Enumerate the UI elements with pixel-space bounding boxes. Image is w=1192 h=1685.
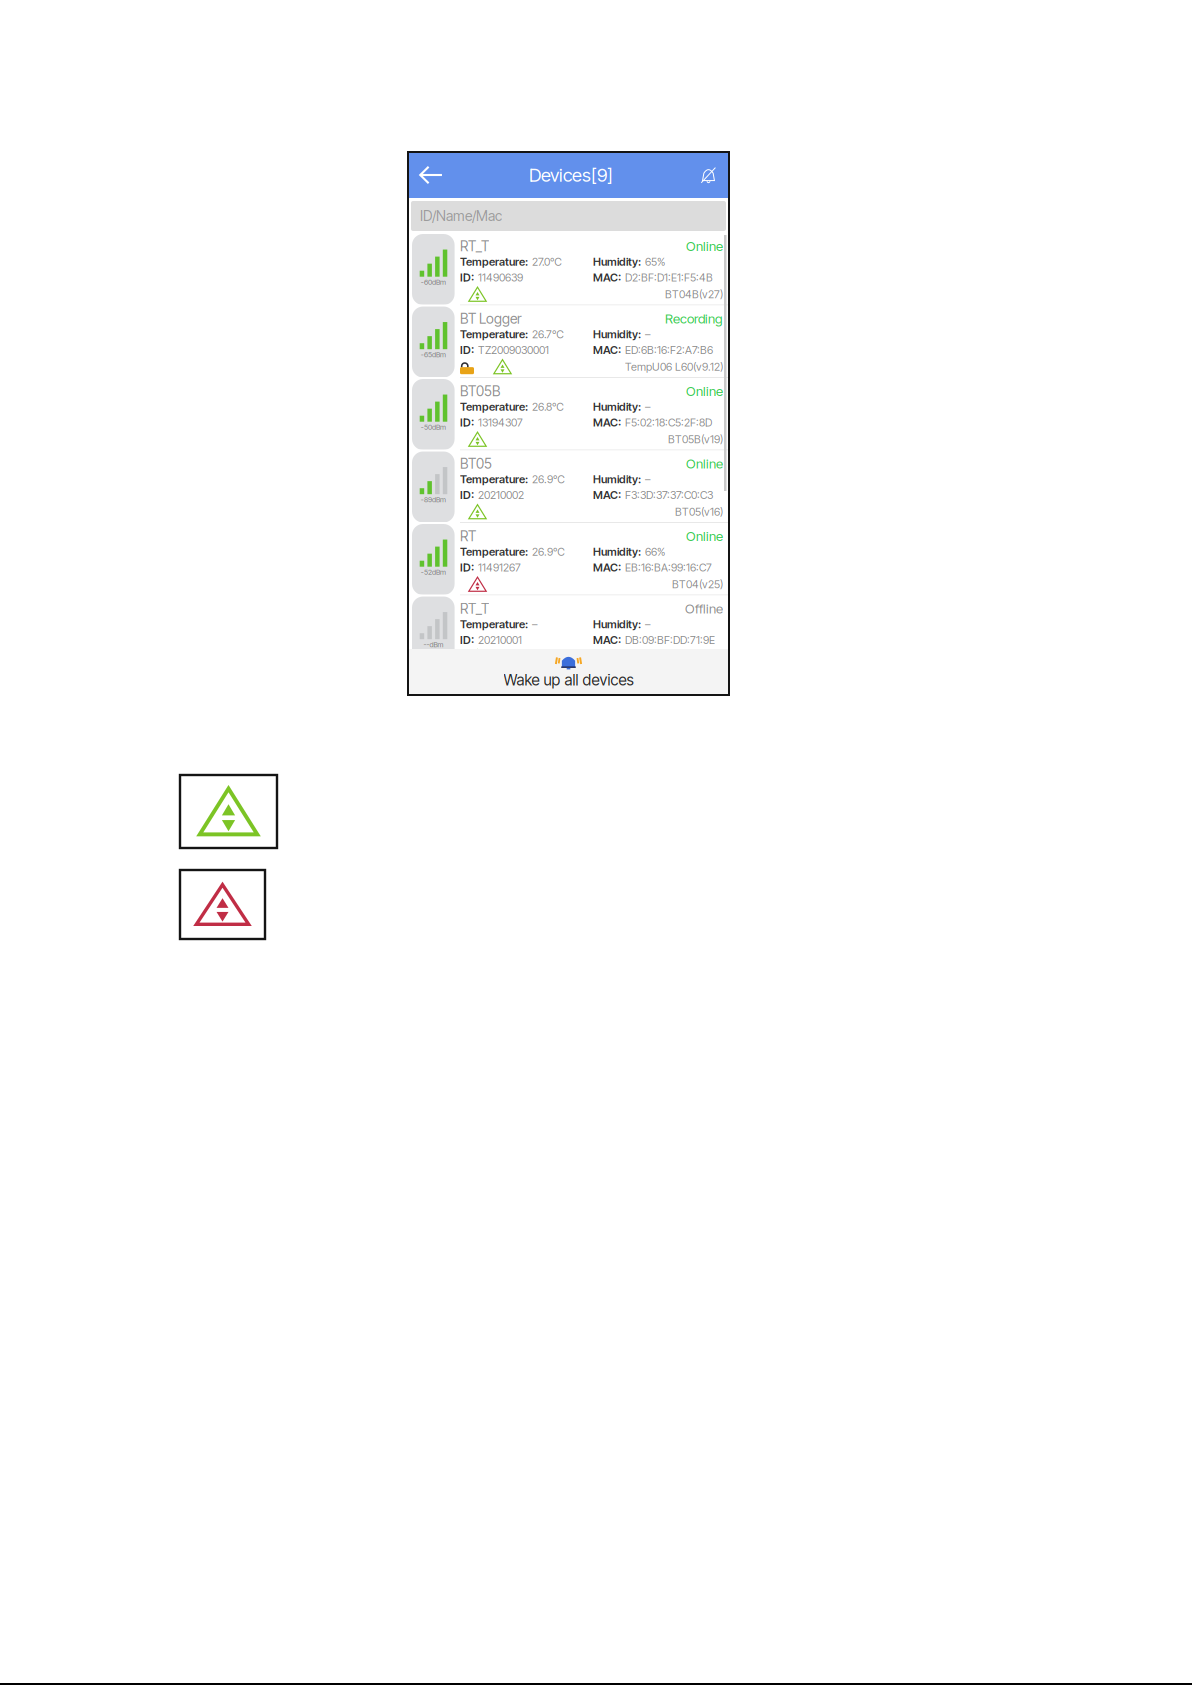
staticText: MAC: (593, 416, 621, 429)
staticText: -60dBm (421, 278, 446, 286)
staticText: ID: (460, 416, 474, 429)
staticText: Online (686, 238, 723, 254)
staticText: Humidity: (593, 617, 641, 631)
staticText: ID: (460, 561, 474, 574)
staticText: Temperature: (460, 545, 528, 559)
button[interactable]: Wake up all devices (408, 649, 729, 695)
staticText: Humidity: (593, 472, 641, 486)
staticText: Online (686, 383, 723, 399)
staticText: Humidity: (593, 327, 641, 341)
staticText: Online (686, 528, 723, 544)
staticText: ID: (460, 343, 474, 357)
staticText: 66% (645, 545, 665, 558)
staticText: Temperature: (460, 255, 528, 269)
staticText: Humidity: (593, 400, 641, 414)
staticText: F3:3D:37:37:C0:C3 (625, 488, 713, 502)
staticText: EB:16:BA:99:16:C7 (625, 561, 712, 574)
staticText: Temperature: (460, 617, 528, 631)
staticText: Humidity: (593, 545, 641, 559)
staticText: 11490639 (478, 271, 523, 284)
staticText: DB:09:BF:DD:71:9E (625, 633, 715, 647)
staticText: ID: (460, 488, 474, 502)
staticText: 20210001 (478, 633, 522, 647)
staticText: Humidity: (593, 255, 641, 269)
staticText: Offline (685, 601, 723, 617)
button[interactable]: -65dBm (408, 305, 729, 377)
staticText: Temperature: (460, 472, 528, 486)
staticText: RT (460, 528, 476, 545)
staticText: 26.9℃ (532, 545, 565, 558)
staticText: – (645, 400, 650, 413)
staticText: -50dBm (421, 423, 446, 431)
staticText: – (532, 618, 537, 631)
staticText: 20210002 (478, 488, 524, 502)
staticText: Recording (665, 311, 723, 327)
button[interactable]: -50dBm (408, 378, 729, 449)
staticText: ID: (460, 271, 474, 284)
staticText: Temperature: (460, 400, 528, 414)
staticText: MAC: (593, 633, 621, 647)
button[interactable]: -89dBm (408, 450, 729, 522)
staticText: – (645, 473, 650, 486)
staticText: MAC: (593, 561, 621, 574)
staticText: ID: (460, 633, 474, 647)
button[interactable]: -52dBm (408, 523, 729, 594)
staticText: MAC: (593, 488, 621, 502)
staticText: BT04(v25) (672, 578, 723, 591)
staticText: RT_T (460, 238, 489, 255)
staticText: --dBm (423, 640, 443, 649)
button[interactable]: --dBm (408, 595, 729, 667)
staticText: BT04B(v27) (665, 288, 723, 301)
staticText: BT05B (460, 383, 500, 400)
staticText: ID/Name/Mac (420, 207, 502, 224)
staticText: Devices[9] (529, 164, 613, 186)
staticText: 11491267 (478, 561, 521, 574)
staticText: D2:BF:D1:E1:F5:4B (625, 271, 713, 284)
staticText: BT05(v16) (675, 505, 723, 518)
staticText: 13194307 (478, 416, 523, 429)
staticText: – (645, 618, 650, 631)
staticText: -52dBm (421, 568, 446, 576)
staticText: – (645, 328, 650, 341)
button[interactable]: Back (412, 152, 450, 198)
staticText: 26.7℃ (532, 328, 564, 341)
staticText: TZ2009030001 (478, 343, 549, 357)
button[interactable]: Mute alerts (692, 152, 725, 198)
staticText: TempU06 L60(v9.12) (625, 360, 723, 373)
staticText: BT05B(v19) (668, 433, 723, 446)
staticText: BT Logger (460, 310, 522, 327)
staticText: MAC: (593, 343, 621, 357)
button[interactable]: -60dBm (408, 233, 729, 304)
staticText: Online (686, 456, 723, 472)
staticText: F5:02:18:C5:2F:8D (625, 416, 712, 429)
staticText: 27.0℃ (532, 255, 562, 268)
staticText: BT05 (460, 455, 492, 472)
staticText: 65% (645, 255, 665, 268)
staticText: Wake up all devices (503, 671, 633, 689)
staticText: 26.8℃ (532, 400, 564, 413)
staticText: -65dBm (421, 350, 446, 359)
staticText: 26.9℃ (532, 473, 565, 486)
staticText: Temperature: (460, 327, 528, 341)
staticText: RT_T (460, 600, 489, 617)
staticText: MAC: (593, 271, 621, 284)
staticText: -89dBm (421, 495, 446, 504)
staticText: ED:6B:16:F2:A7:B6 (625, 343, 713, 357)
